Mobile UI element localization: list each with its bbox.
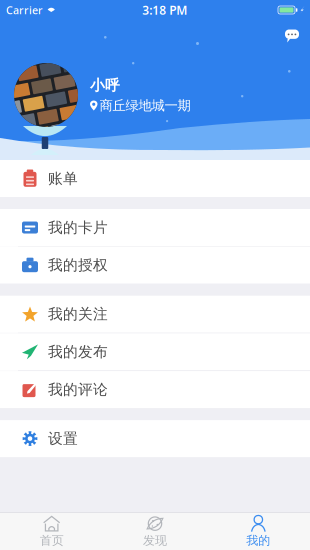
button[interactable]: 我的发布 [0, 333, 310, 370]
staticText: 我的授权 [48, 256, 108, 274]
staticText: 设置 [48, 430, 78, 448]
button[interactable]: 我的授权 [0, 247, 310, 284]
staticText: 我的评论 [48, 381, 108, 399]
staticText: 我的关注 [48, 305, 108, 323]
staticText: 发现 [143, 533, 167, 548]
button[interactable]: 我的关注 [0, 296, 310, 333]
button[interactable]: 我的评论 [0, 371, 310, 408]
button[interactable]: 首页 [0, 513, 103, 550]
button[interactable]: 账单 [0, 160, 310, 197]
staticText: Carrier [6, 3, 43, 17]
staticText: 我的 [246, 533, 270, 548]
staticText: 账单 [48, 169, 78, 187]
staticText: 首页 [40, 533, 64, 548]
button[interactable]: Messages [280, 25, 304, 47]
staticText: 小呼 [90, 76, 120, 94]
button[interactable]: 设置 [0, 420, 310, 457]
staticText: 商丘绿地城一期 [99, 97, 190, 114]
button[interactable]: 我的 [207, 513, 310, 550]
button[interactable]: 我的卡片 [0, 209, 310, 246]
button[interactable]: 发现 [103, 513, 207, 550]
staticText: 我的卡片 [48, 218, 108, 236]
staticText: 我的发布 [48, 343, 108, 361]
staticText: 3:18 PM [142, 2, 187, 18]
